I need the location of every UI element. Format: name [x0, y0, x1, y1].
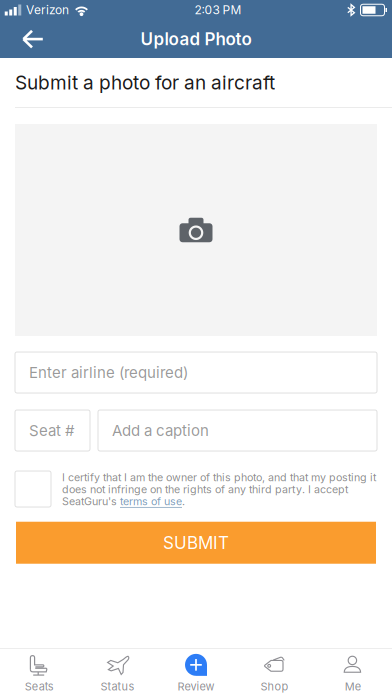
staticText: Status — [101, 680, 135, 693]
button[interactable]: Me — [314, 649, 392, 696]
staticText: 2:03 PM — [194, 3, 241, 17]
button[interactable]: Review — [157, 649, 235, 696]
staticText: Submit a photo for an aircraft — [15, 71, 275, 94]
staticText: Review — [177, 680, 214, 693]
staticText: Shop — [260, 680, 288, 693]
staticText: Upload Photo — [140, 29, 251, 49]
staticText: Enter airline (required) — [29, 363, 188, 381]
staticText: I certify that I am the owner of this ph… — [62, 471, 376, 508]
staticText: Verizon — [26, 3, 69, 17]
staticText: Me — [345, 680, 361, 693]
button[interactable]: Seats — [0, 649, 78, 696]
staticText: Add a caption — [112, 421, 209, 439]
staticText: SUBMIT — [163, 532, 229, 553]
staticText: Seats — [25, 680, 54, 693]
button[interactable]: Status — [78, 649, 157, 696]
button[interactable]: SUBMIT — [16, 522, 376, 564]
button[interactable]: Certify ownership checkbox — [15, 471, 51, 507]
staticText: Seat # — [29, 421, 75, 439]
button[interactable]: Back — [0, 20, 60, 58]
button[interactable]: Shop — [235, 649, 314, 696]
